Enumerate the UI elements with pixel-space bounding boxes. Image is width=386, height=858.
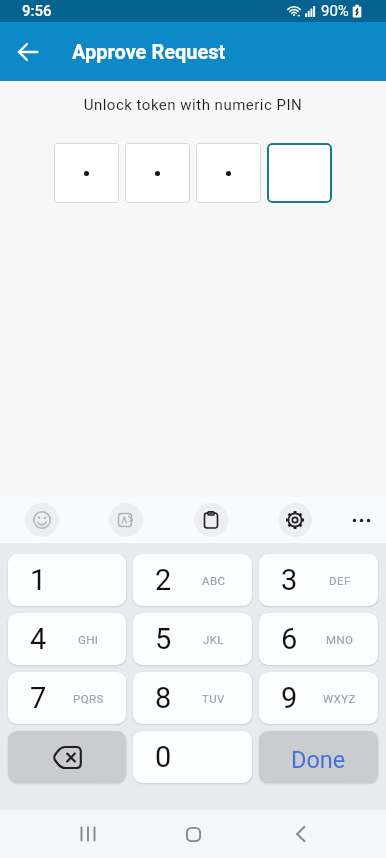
button[interactable]: Done xyxy=(259,731,378,783)
button[interactable]: 7 xyxy=(8,672,126,724)
button[interactable] xyxy=(8,731,126,783)
staticText: TUV xyxy=(202,692,225,705)
staticText: 90% xyxy=(321,2,349,20)
button[interactable]: 8 xyxy=(133,672,252,724)
staticText: 6 xyxy=(281,622,298,656)
staticText: Unlock token with numeric PIN xyxy=(0,96,386,114)
button[interactable]: 9 xyxy=(259,672,378,724)
button[interactable] xyxy=(109,503,143,537)
staticText: 8 xyxy=(155,681,172,715)
button[interactable] xyxy=(344,503,378,537)
staticText: Done xyxy=(291,746,346,774)
staticText: 5 xyxy=(155,622,172,656)
button[interactable] xyxy=(125,143,190,203)
button[interactable] xyxy=(267,143,332,203)
staticText: 1 xyxy=(30,563,47,597)
button[interactable] xyxy=(4,28,52,76)
staticText: MNO xyxy=(326,633,354,646)
staticText: GHI xyxy=(78,633,99,646)
button[interactable]: 3 xyxy=(259,554,378,606)
staticText: 9:56 xyxy=(22,2,52,20)
button[interactable] xyxy=(169,810,217,858)
staticText: 3 xyxy=(281,563,298,597)
staticText: ABC xyxy=(202,574,226,587)
button[interactable] xyxy=(278,503,312,537)
staticText: 4 xyxy=(30,622,47,656)
staticText: WXYZ xyxy=(323,692,356,705)
staticText: 2 xyxy=(155,563,172,597)
button[interactable]: 1 xyxy=(8,554,126,606)
button[interactable] xyxy=(194,503,228,537)
button[interactable]: 6 xyxy=(259,613,378,665)
button[interactable] xyxy=(25,503,59,537)
staticText: 0 xyxy=(155,740,172,774)
button[interactable]: 0 xyxy=(133,731,252,783)
button[interactable]: 4 xyxy=(8,613,126,665)
button[interactable] xyxy=(196,143,261,203)
staticText: 7 xyxy=(30,681,47,715)
staticText: DEF xyxy=(329,574,351,587)
button[interactable]: 5 xyxy=(133,613,252,665)
staticText: 9 xyxy=(281,681,298,715)
staticText: Approve Request xyxy=(72,40,226,63)
staticText: PQRS xyxy=(73,692,104,705)
staticText: JKL xyxy=(203,633,224,646)
button[interactable] xyxy=(54,143,119,203)
button[interactable] xyxy=(64,810,112,858)
button[interactable]: 2 xyxy=(133,554,252,606)
button[interactable] xyxy=(277,810,325,858)
